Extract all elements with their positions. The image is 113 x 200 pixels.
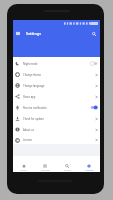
button[interactable]: Check for update [13, 113, 100, 124]
button[interactable]: Change theme [13, 69, 100, 80]
staticText: Settings [85, 169, 94, 172]
staticText: Change theme [23, 73, 41, 77]
button[interactable]: Change language [13, 80, 100, 91]
button[interactable]: Night mode [13, 58, 100, 69]
button[interactable]: Search [56, 156, 78, 172]
button[interactable]: Receive notification [13, 102, 100, 113]
staticText: Search [64, 169, 71, 172]
staticText: Discover [41, 169, 50, 172]
staticText: License [23, 138, 33, 142]
staticText: Share app [23, 95, 36, 99]
staticText: Change language [23, 84, 45, 88]
button[interactable]: License [13, 135, 100, 145]
button[interactable]: About us [13, 124, 100, 135]
staticText: Settings [26, 31, 42, 36]
button[interactable]: Switch on [90, 105, 98, 110]
staticText: Night mode [23, 62, 38, 66]
staticText: About us [23, 128, 34, 132]
button[interactable]: Home [13, 156, 34, 172]
button[interactable]: Search [89, 29, 98, 38]
button[interactable]: Settings [78, 156, 100, 172]
staticText: Check for update [23, 117, 44, 121]
button[interactable]: Switch off [90, 61, 98, 66]
staticText: Receive notification [23, 106, 47, 110]
button[interactable]: Discover [34, 156, 56, 172]
button[interactable]: Share app [13, 91, 100, 102]
button[interactable]: Open navigation menu [14, 29, 22, 38]
staticText: Home [20, 169, 27, 172]
